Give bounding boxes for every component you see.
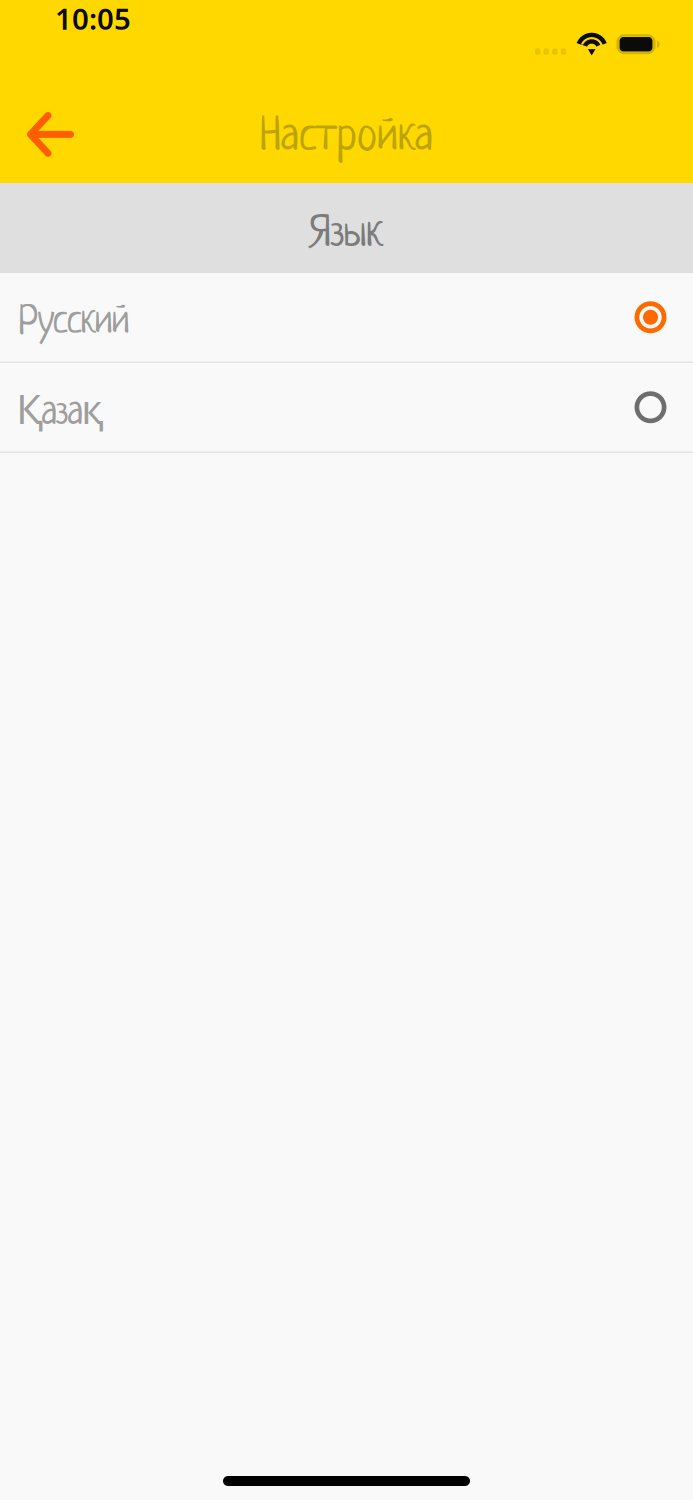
staticText: Қазақ bbox=[16, 381, 103, 436]
staticText: 10:05 bbox=[55, 0, 131, 38]
button[interactable]: Русский bbox=[0, 273, 693, 363]
button[interactable]: Back bbox=[0, 86, 96, 182]
staticText: Настройка bbox=[259, 114, 433, 163]
staticText: Язык bbox=[309, 212, 384, 259]
staticText: Русский bbox=[18, 302, 130, 344]
button[interactable]: Қазақ bbox=[0, 363, 693, 453]
